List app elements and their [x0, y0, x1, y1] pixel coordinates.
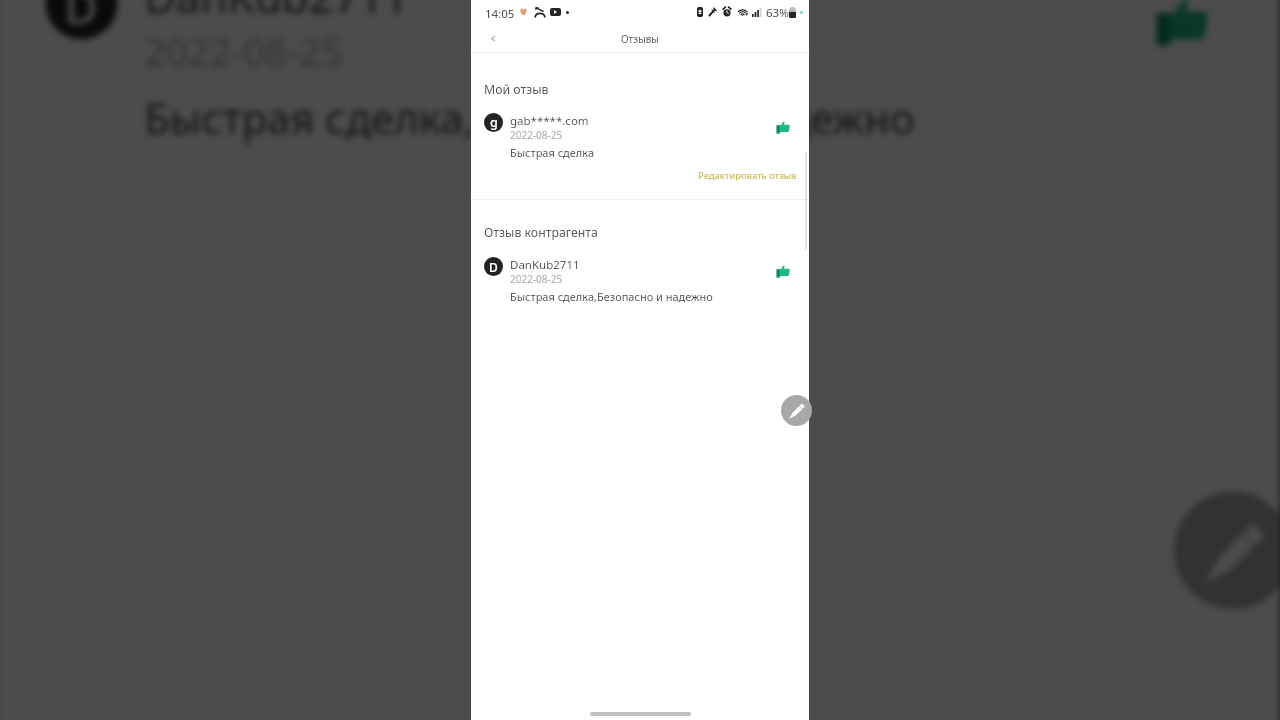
staticText: D — [64, 0, 99, 35]
staticText: 2022-08-25 — [510, 128, 563, 142]
staticText: gab*****.com — [510, 113, 589, 129]
staticText: 2022-08-25 — [144, 24, 346, 77]
button[interactable]: D — [0, 0, 1280, 39]
staticText: Редактировать отзыв — [698, 169, 797, 182]
staticText: 2022-08-25 — [510, 272, 563, 286]
button[interactable]: g — [471, 113, 809, 132]
button[interactable]: Write a review — [1174, 491, 1280, 609]
staticText: g — [490, 114, 498, 131]
staticText: 63% — [766, 5, 789, 21]
staticText: DanKub2711 — [144, 0, 410, 28]
staticText: Отзывы — [621, 32, 659, 46]
staticText: Быстрая сделка,Безопасно и надежно — [144, 89, 916, 146]
staticText: D — [489, 259, 498, 275]
staticText: Отзыв контрагента — [484, 224, 598, 241]
button[interactable]: D — [471, 257, 809, 276]
staticText: Быстрая сделка — [510, 145, 595, 160]
staticText: Мой отзыв — [484, 81, 549, 98]
button[interactable]: Редактировать отзыв — [698, 169, 797, 182]
staticText: DanKub2711 — [510, 257, 580, 273]
staticText: 14:05 — [485, 6, 515, 22]
button[interactable]: Back — [483, 29, 502, 48]
button[interactable]: Write a review — [781, 395, 812, 426]
staticText: Быстрая сделка,Безопасно и надежно — [510, 289, 713, 304]
